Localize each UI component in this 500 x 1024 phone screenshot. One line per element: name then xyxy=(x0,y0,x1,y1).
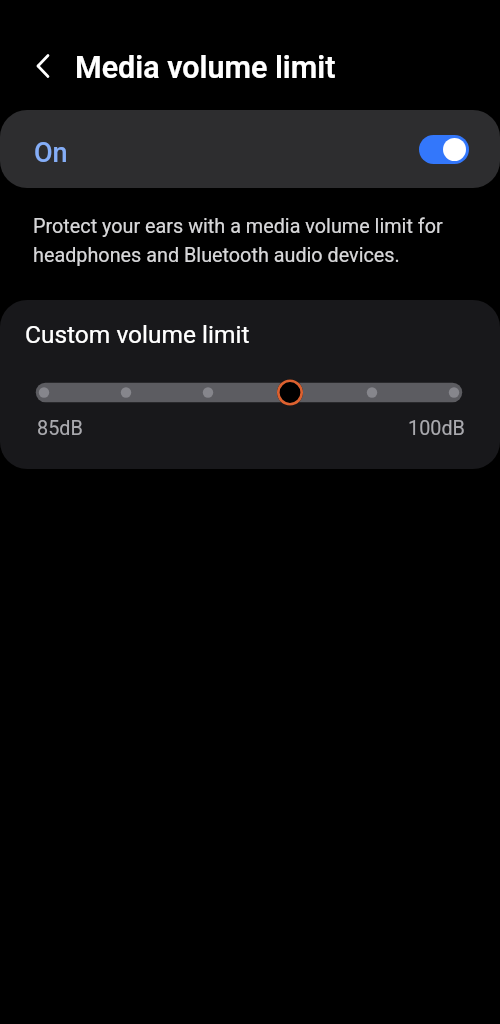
button[interactable]: On xyxy=(0,110,500,188)
button[interactable]: Media volume limit, on xyxy=(419,135,469,164)
staticText: Custom volume limit xyxy=(25,320,250,349)
staticText: 100dB xyxy=(408,417,465,440)
button[interactable]: Volume limit, 94 dB xyxy=(0,368,500,416)
staticText: On xyxy=(34,137,68,169)
staticText: 85dB xyxy=(37,417,83,440)
staticText: Protect your ears with a media volume li… xyxy=(33,215,500,267)
button[interactable]: Navigate up xyxy=(21,44,65,88)
staticText: Media volume limit xyxy=(75,50,336,86)
